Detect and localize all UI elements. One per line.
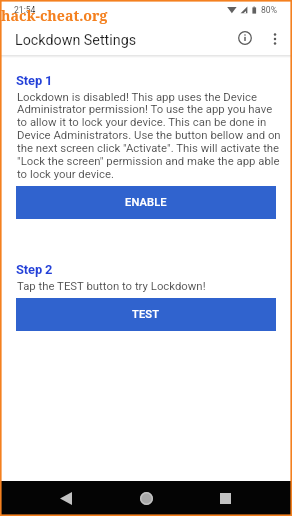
staticText: 80% [261,5,277,15]
staticText: Lockdown Settings [15,32,137,49]
staticText: Step 2 [16,262,53,277]
staticText: hack-cheat.org [1,6,108,25]
button[interactable]: ENABLE [16,186,276,219]
staticText: Step 1 [16,73,53,88]
staticText: ENABLE [125,196,167,209]
button[interactable]: Info [230,23,260,53]
button[interactable]: Home [126,481,166,516]
button[interactable]: TEST [16,298,276,331]
staticText: TEST [132,308,160,321]
staticText: Tap the TEST button to try Lockdown! [17,279,206,292]
button[interactable]: More options [260,24,289,53]
button[interactable]: Recent apps [205,481,245,516]
button[interactable]: Back [46,481,86,516]
staticText: Lockdown is disabled! This app uses the … [17,90,283,181]
staticText: 21:54 [14,5,36,15]
